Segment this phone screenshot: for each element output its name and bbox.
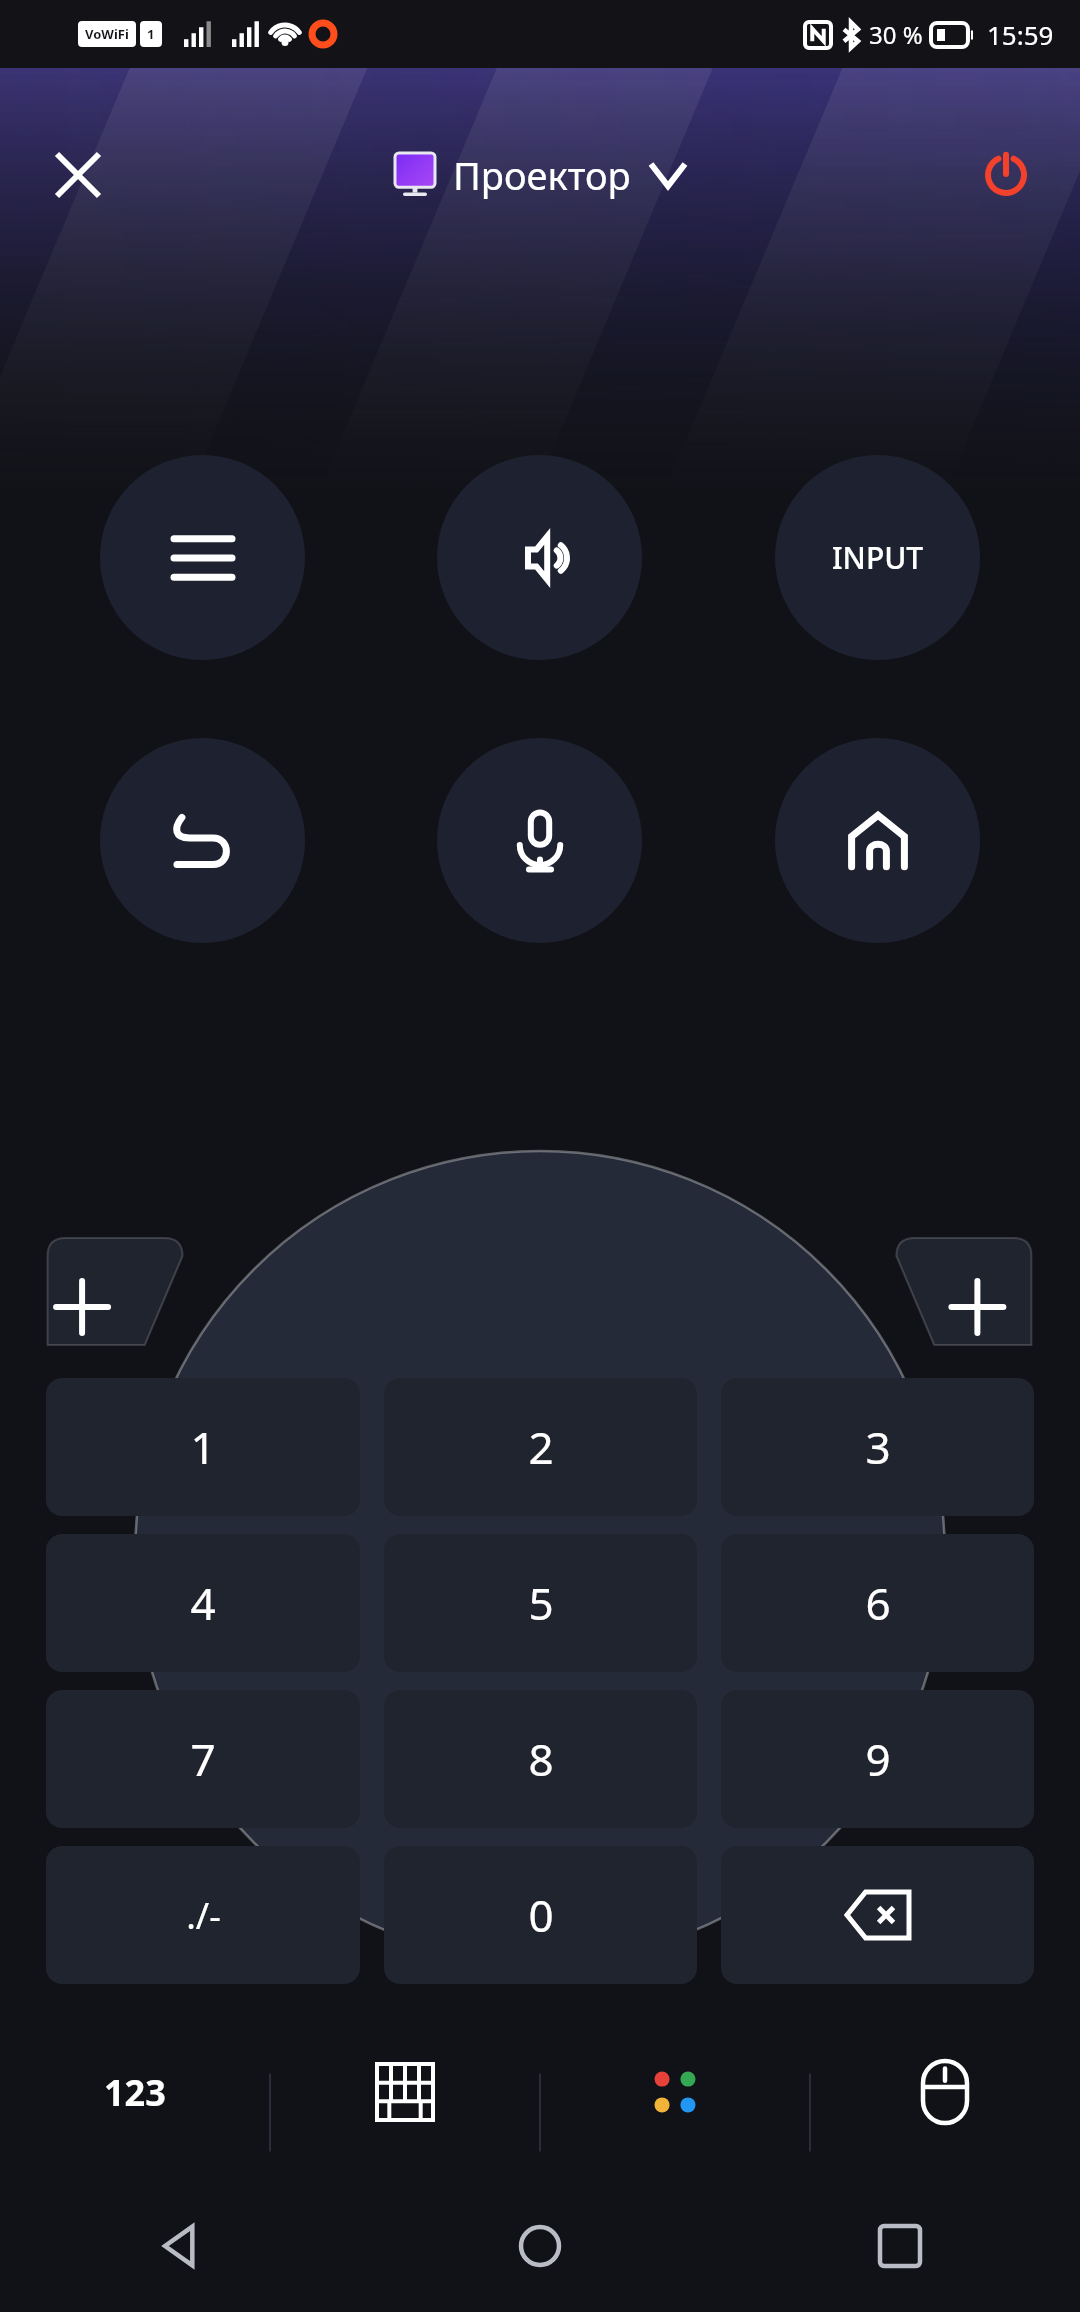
button[interactable]: Input	[775, 455, 980, 660]
button[interactable]: ./-	[46, 1846, 360, 1984]
button[interactable]: Close	[40, 137, 116, 213]
staticText: 9	[865, 1729, 891, 1789]
staticText: 0	[528, 1885, 554, 1945]
staticText: 5	[528, 1573, 554, 1633]
button[interactable]: Home	[775, 738, 980, 943]
staticText: 123	[104, 2068, 166, 2117]
staticText: Проектор	[453, 149, 631, 201]
button[interactable]: Power	[968, 137, 1044, 213]
button[interactable]: Back	[100, 738, 305, 943]
button[interactable]: 1	[46, 1378, 360, 1516]
button[interactable]: Mouse	[810, 2045, 1080, 2175]
button[interactable]: Проектор	[395, 149, 685, 201]
button[interactable]: Numbers	[0, 2045, 270, 2175]
staticText: 2	[528, 1417, 554, 1477]
staticText: 30 %	[869, 18, 923, 51]
staticText: 8	[528, 1729, 554, 1789]
staticText: INPUT	[832, 537, 924, 578]
staticText: 3	[865, 1417, 891, 1477]
button[interactable]: Menu	[100, 455, 305, 660]
button[interactable]: Voice	[437, 738, 642, 943]
button[interactable]: Volume	[437, 455, 642, 660]
staticText: ./-	[186, 1891, 221, 1940]
staticText: 6	[865, 1573, 891, 1633]
button[interactable]: Back	[0, 2180, 360, 2312]
button[interactable]: 5	[384, 1534, 697, 1672]
button[interactable]: Home	[360, 2180, 720, 2312]
staticText: 7	[190, 1729, 216, 1789]
button[interactable]: 3	[721, 1378, 1034, 1516]
button[interactable]: 0	[384, 1846, 697, 1984]
button[interactable]: 9	[721, 1690, 1034, 1828]
button[interactable]: Backspace	[721, 1846, 1034, 1984]
button[interactable]: 6	[721, 1534, 1034, 1672]
button[interactable]: 4	[46, 1534, 360, 1672]
staticText: 1	[190, 1417, 216, 1477]
button[interactable]: Volume up	[48, 1235, 183, 1345]
button[interactable]: Channel up	[897, 1235, 1032, 1345]
staticText: 4	[190, 1573, 216, 1633]
button[interactable]: Color buttons	[540, 2045, 810, 2175]
button[interactable]: Keyboard	[270, 2045, 540, 2175]
button[interactable]: 7	[46, 1690, 360, 1828]
button[interactable]: 2	[384, 1378, 697, 1516]
button[interactable]: Recents	[720, 2180, 1080, 2312]
button[interactable]: 8	[384, 1690, 697, 1828]
staticText: 1	[147, 25, 155, 43]
staticText: VoWiFi	[85, 25, 129, 43]
staticText: 15:59	[987, 17, 1054, 52]
